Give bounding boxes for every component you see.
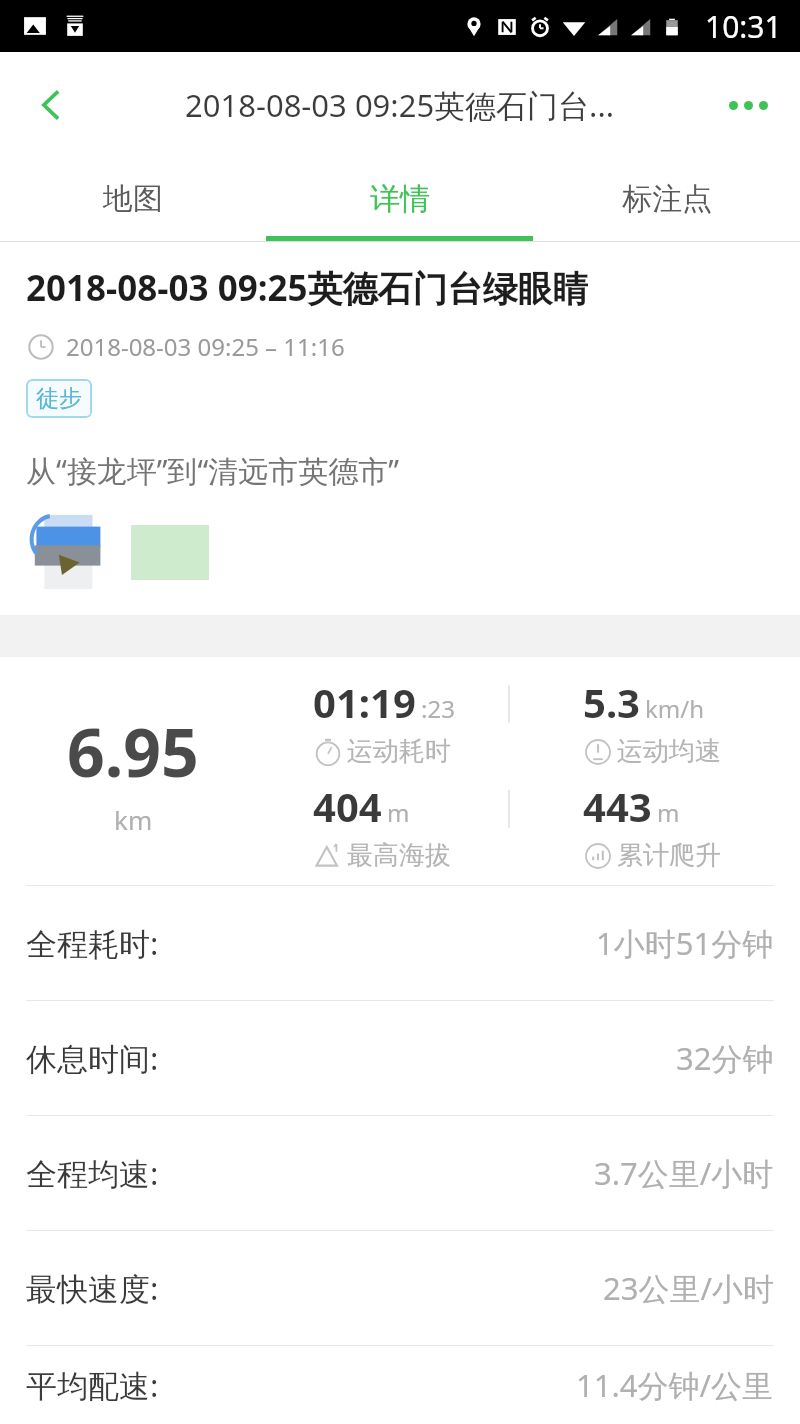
staticText: 全程耗时: bbox=[26, 922, 159, 964]
staticText: km bbox=[114, 802, 153, 837]
staticText: m bbox=[657, 796, 680, 829]
button[interactable]: 全程均速: bbox=[0, 1116, 800, 1230]
staticText: 最快速度: bbox=[26, 1267, 159, 1309]
button[interactable]: 地图 bbox=[0, 157, 266, 241]
staticText: 443 bbox=[583, 779, 652, 833]
button[interactable]: More options bbox=[714, 71, 782, 139]
button[interactable]: 徒步 bbox=[26, 379, 92, 418]
staticText: m bbox=[387, 796, 410, 829]
staticText: 2018-08-03 09:25 – 11:16 bbox=[66, 330, 345, 363]
button[interactable]: 最快速度: bbox=[0, 1231, 800, 1345]
staticText: 3.7公里/小时 bbox=[594, 1152, 774, 1194]
staticText: 2018-08-03 09:25英德石门台绿眼睛 bbox=[26, 264, 588, 312]
staticText: 23公里/小时 bbox=[603, 1267, 774, 1309]
staticText: 全程均速: bbox=[26, 1152, 159, 1194]
staticText: 404 bbox=[313, 779, 382, 833]
staticText: :23 bbox=[421, 692, 455, 725]
button[interactable]: 休息时间: bbox=[0, 1001, 800, 1115]
staticText: 累计爬升 bbox=[617, 839, 721, 872]
staticText: 5.3 bbox=[583, 675, 640, 729]
staticText: km/h bbox=[645, 692, 705, 725]
staticText: 1小时51分钟 bbox=[596, 922, 774, 964]
staticText: 地图 bbox=[103, 180, 163, 218]
staticText: 详情 bbox=[370, 180, 430, 218]
button[interactable]: 详情 bbox=[266, 157, 533, 241]
staticText: 2018-08-03 09:25英德石门台... bbox=[185, 84, 615, 126]
staticText: 运动耗时 bbox=[347, 735, 451, 768]
button[interactable]: Back bbox=[18, 71, 86, 139]
staticText: 从“接龙坪”到“清远市英德市” bbox=[26, 450, 400, 491]
staticText: 10:31 bbox=[705, 6, 782, 47]
button[interactable]: 平均配速: bbox=[0, 1346, 800, 1424]
button[interactable]: 标注点 bbox=[533, 157, 800, 241]
staticText: 标注点 bbox=[622, 180, 712, 218]
staticText: 运动均速 bbox=[617, 735, 721, 768]
staticText: 徒步 bbox=[36, 384, 82, 413]
staticText: 最高海拔 bbox=[347, 839, 451, 872]
staticText: 11.4分钟/公里 bbox=[576, 1364, 774, 1406]
button[interactable]: 全程耗时: bbox=[0, 886, 800, 1000]
staticText: 6.95 bbox=[67, 706, 199, 796]
staticText: 休息时间: bbox=[26, 1037, 159, 1079]
staticText: 32分钟 bbox=[676, 1037, 774, 1079]
staticText: 平均配速: bbox=[26, 1364, 159, 1406]
staticText: 01:19 bbox=[313, 675, 416, 729]
